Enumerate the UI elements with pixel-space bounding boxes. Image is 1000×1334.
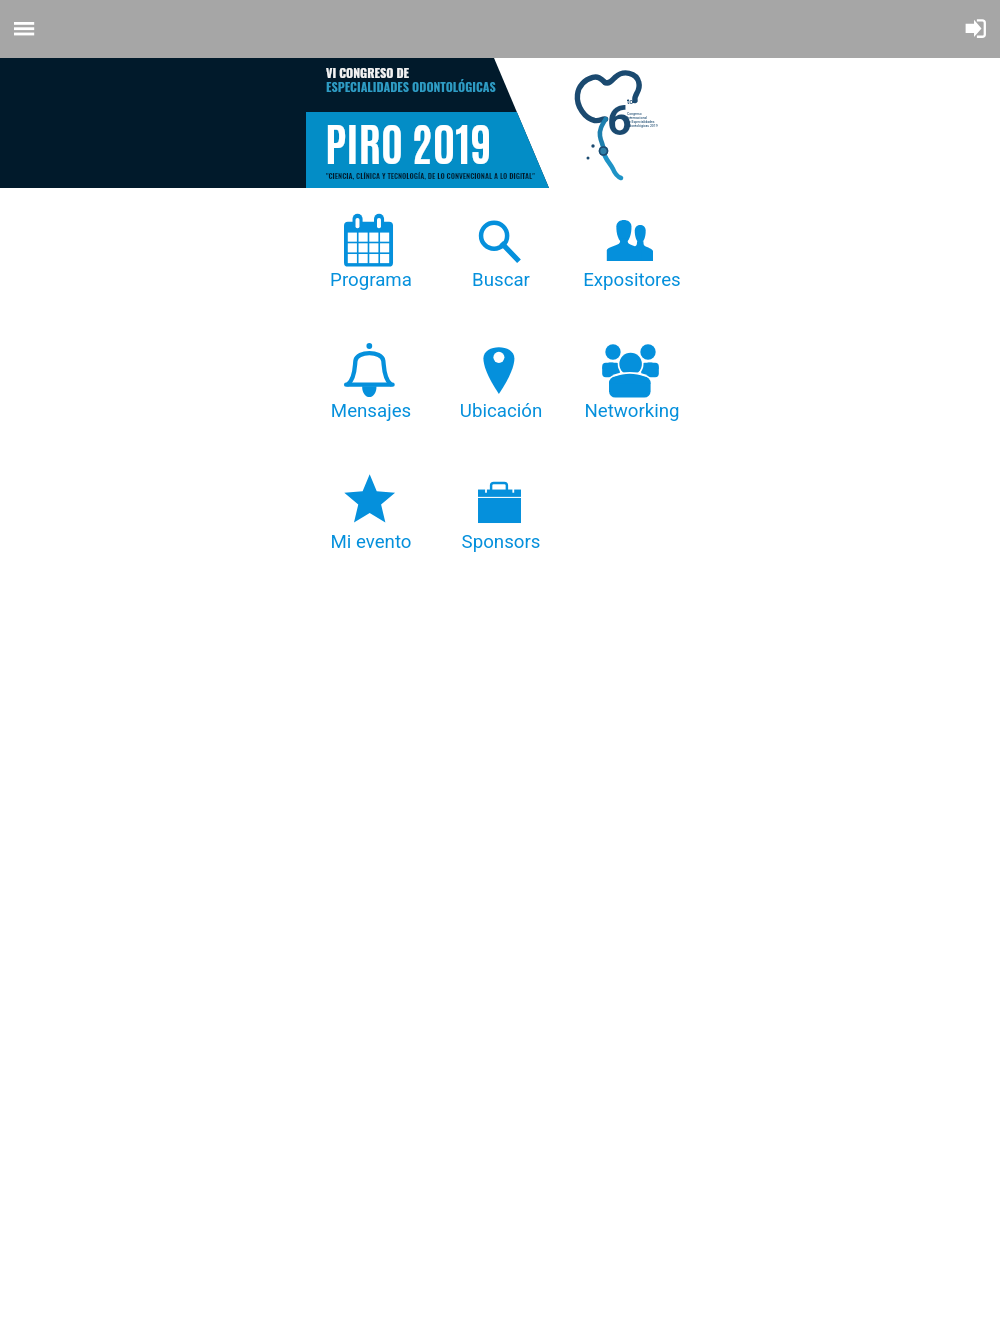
staticText: Internacional bbox=[627, 116, 648, 120]
staticText: Mi evento bbox=[309, 531, 433, 553]
staticText: Mensajes bbox=[309, 400, 433, 422]
button[interactable]: Login bbox=[954, 8, 998, 52]
button[interactable]: Mi evento bbox=[309, 468, 433, 557]
button[interactable]: Open navigation menu bbox=[2, 8, 46, 52]
button[interactable]: Expositores bbox=[570, 206, 694, 295]
button[interactable]: Programa bbox=[309, 206, 433, 295]
button[interactable]: Mensajes bbox=[309, 337, 433, 426]
staticText: Congreso bbox=[627, 112, 642, 116]
button[interactable]: Buscar bbox=[439, 206, 563, 295]
staticText: to bbox=[627, 97, 634, 105]
staticText: VI CONGRESO DE bbox=[326, 63, 410, 81]
staticText: Networking bbox=[570, 400, 694, 422]
staticText: Odontológicas 2019 bbox=[627, 124, 658, 128]
staticText: Programa bbox=[309, 269, 433, 291]
staticText: "CIENCIA, CLÍNICA Y TECNOLOGÍA, DE LO CO… bbox=[326, 170, 535, 181]
staticText: ESPECIALIDADES ODONTOLÓGICAS bbox=[326, 77, 496, 95]
staticText: de Especialidades bbox=[627, 120, 655, 124]
button[interactable]: Sponsors bbox=[439, 468, 563, 557]
staticText: Expositores bbox=[570, 269, 694, 291]
staticText: Sponsors bbox=[439, 531, 563, 553]
staticText: 6 bbox=[607, 95, 632, 145]
button[interactable]: Networking bbox=[570, 337, 694, 426]
staticText: Ubicación bbox=[439, 400, 563, 422]
button[interactable]: Ubicación bbox=[439, 337, 563, 426]
staticText: PIRO 2019 bbox=[325, 111, 492, 171]
staticText: Buscar bbox=[439, 269, 563, 291]
